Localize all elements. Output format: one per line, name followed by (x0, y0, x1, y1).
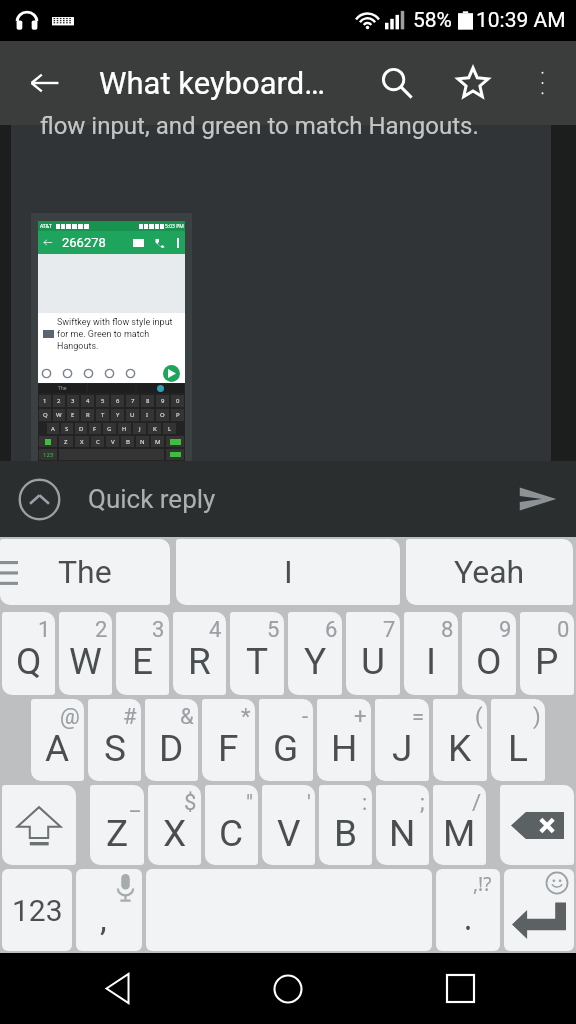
button[interactable]: / (433, 785, 486, 865)
staticText: 123 (12, 893, 63, 928)
button[interactable]: Send (500, 461, 576, 537)
staticText: Q (16, 640, 42, 683)
staticText: 5 (101, 397, 105, 405)
staticText: K (448, 727, 472, 770)
button[interactable]: - (259, 699, 313, 781)
button[interactable]: : (319, 785, 372, 865)
button[interactable]: Favorite (437, 41, 509, 125)
staticText: 5:03 PM (165, 223, 184, 230)
button[interactable]: 8 (404, 612, 458, 695)
staticText: 6 (325, 617, 338, 643)
button[interactable]: Recents (405, 954, 515, 1023)
staticText: # (123, 704, 137, 730)
button[interactable]: 0 (520, 612, 574, 695)
staticText: 8 (146, 397, 150, 405)
button[interactable]: Backspace (500, 785, 574, 865)
staticText: M (443, 812, 476, 855)
staticText: = (412, 704, 425, 730)
staticText: 4 (86, 397, 90, 405)
staticText: 58% (413, 8, 452, 33)
staticText: T (246, 640, 269, 683)
button[interactable]: _ (90, 785, 144, 865)
button[interactable]: Home (233, 954, 343, 1023)
staticText: The (58, 385, 67, 392)
staticText: A (45, 727, 70, 770)
staticText: / (472, 790, 482, 816)
button[interactable]: 123 (2, 869, 72, 951)
button[interactable]: ; (376, 785, 429, 865)
staticText: O (476, 640, 502, 683)
staticText: I (284, 553, 293, 591)
staticText: 266278 (62, 235, 106, 250)
staticText: W (56, 411, 62, 419)
button[interactable]: " (205, 785, 258, 865)
staticText: H (331, 727, 358, 770)
staticText: flow input, and green to match Hangouts. (40, 112, 479, 140)
staticText: 7 (131, 397, 135, 405)
button[interactable]: Period (436, 869, 500, 951)
button[interactable]: ' (262, 785, 315, 865)
button[interactable]: 5 (230, 612, 284, 695)
staticText: Y (304, 640, 327, 683)
button[interactable]: ) (491, 699, 545, 781)
staticText: M (155, 438, 161, 446)
button[interactable]: 2 (59, 612, 112, 695)
button[interactable]: 4 (173, 612, 226, 695)
staticText: 0 (557, 617, 570, 643)
button[interactable]: Back (0, 41, 90, 125)
staticText: @ (60, 704, 80, 730)
staticText: 2 (57, 397, 61, 405)
button[interactable]: 6 (288, 612, 342, 695)
staticText: + (354, 704, 367, 730)
button[interactable]: # (88, 699, 141, 781)
staticText: , (100, 899, 107, 939)
button[interactable]: 7 (346, 612, 400, 695)
button[interactable]: More options (509, 41, 576, 125)
staticText: - (302, 704, 309, 730)
staticText: 4 (209, 617, 222, 643)
button[interactable]: 1 (2, 612, 55, 695)
staticText: U (130, 411, 135, 419)
staticText: R (86, 411, 90, 419)
staticText: 123 (43, 451, 54, 459)
button[interactable]: 3 (116, 612, 169, 695)
button[interactable]: Shift (2, 785, 76, 865)
button[interactable]: * (202, 699, 255, 781)
button[interactable]: ( (433, 699, 487, 781)
staticText: X (80, 438, 84, 446)
staticText: T (101, 411, 105, 419)
staticText: D (79, 425, 84, 433)
staticText: F (93, 425, 97, 433)
button[interactable]: Search (357, 41, 437, 125)
staticText: G (273, 727, 299, 770)
button[interactable]: @ (31, 699, 84, 781)
button[interactable]: The (0, 539, 170, 605)
button[interactable]: $ (148, 785, 201, 865)
button[interactable]: Comma (76, 869, 142, 951)
staticText: ' (307, 790, 311, 816)
button[interactable]: Back (62, 954, 172, 1023)
staticText: A (51, 425, 55, 433)
staticText: 5 (267, 617, 280, 643)
staticText: ,!? (473, 871, 492, 897)
button[interactable]: = (375, 699, 429, 781)
button[interactable]: + (317, 699, 371, 781)
button[interactable]: Enter (504, 869, 574, 951)
staticText: I (146, 411, 149, 419)
staticText: K (153, 425, 157, 433)
staticText: G (107, 425, 112, 433)
staticText: B (126, 438, 130, 446)
staticText: ) (533, 704, 541, 730)
staticText: 9 (499, 617, 512, 643)
staticText: 10:39 AM (476, 8, 566, 33)
staticText: O (160, 411, 165, 419)
button[interactable]: I (176, 539, 400, 605)
button[interactable]: Yeah (406, 539, 573, 605)
button[interactable]: Expand (0, 461, 78, 537)
staticText: 3 (152, 617, 165, 643)
staticText: : (362, 790, 368, 816)
button[interactable]: & (145, 699, 198, 781)
staticText: P (176, 411, 180, 419)
button[interactable]: 9 (462, 612, 516, 695)
